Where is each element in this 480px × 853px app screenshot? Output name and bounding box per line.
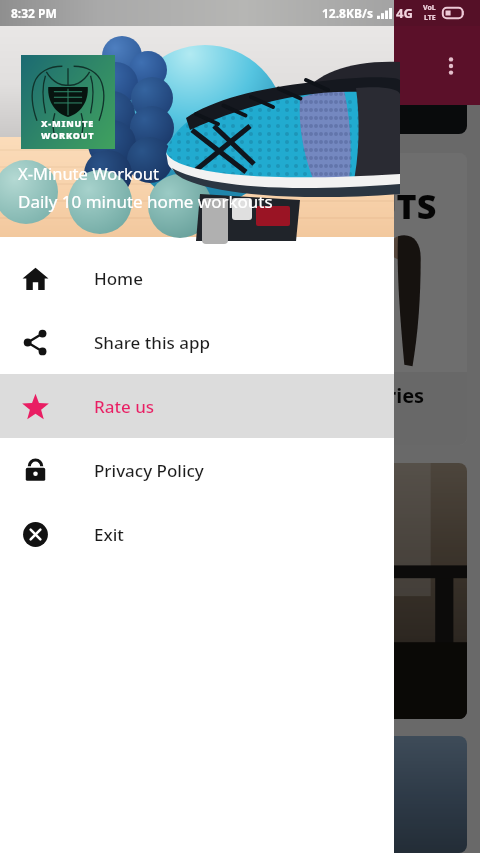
staticText: 8:32 PM bbox=[11, 5, 57, 21]
staticText: Share this app bbox=[94, 331, 211, 354]
staticText: WORKOUT bbox=[41, 129, 95, 141]
button[interactable]: Exit bbox=[0, 502, 394, 566]
staticText: 4G bbox=[396, 4, 413, 22]
staticText: Workout categories bbox=[227, 382, 425, 409]
staticText: Daily 10 minute home workouts bbox=[18, 190, 273, 213]
staticText: 12.8KB/s bbox=[322, 5, 373, 21]
staticText: Exit bbox=[94, 523, 124, 546]
button[interactable]: Home bbox=[0, 246, 394, 310]
staticText: LTE bbox=[424, 13, 436, 23]
staticText: X-MINUTE bbox=[41, 117, 95, 129]
staticText: X-Minute Workout bbox=[74, 51, 258, 80]
staticText: WORKOUTS bbox=[236, 183, 437, 229]
button[interactable]: Open navigation drawer bbox=[18, 51, 48, 81]
button[interactable]: Share this app bbox=[0, 310, 394, 374]
staticText: Rate us bbox=[94, 395, 155, 418]
staticText: Home bbox=[94, 267, 143, 290]
button[interactable] bbox=[13, 463, 467, 719]
button[interactable] bbox=[13, 736, 467, 853]
staticText: Privacy Policy bbox=[94, 459, 204, 482]
button[interactable]: WORKOUTS bbox=[13, 153, 467, 445]
button[interactable]: Privacy Policy bbox=[0, 438, 394, 502]
staticText: VoL bbox=[423, 3, 436, 13]
staticText: X-Minute Workout bbox=[18, 162, 159, 184]
button[interactable]: Rate us bbox=[0, 374, 394, 438]
button[interactable]: More options bbox=[428, 43, 474, 89]
